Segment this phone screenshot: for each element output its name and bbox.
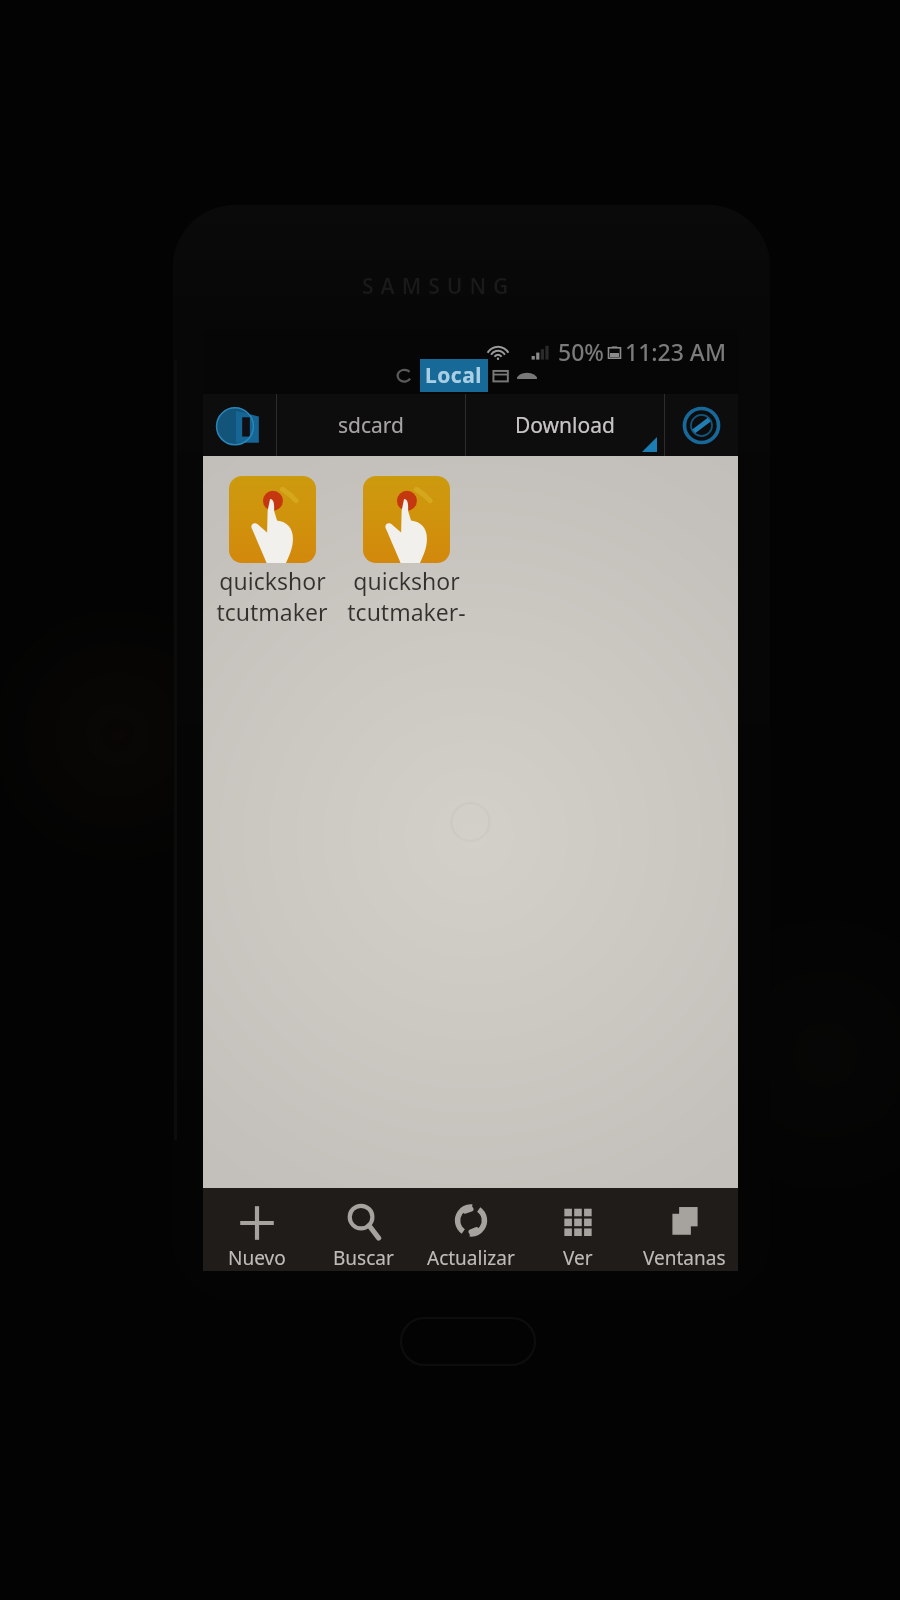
button[interactable]: Download bbox=[466, 394, 664, 456]
button[interactable]: Actualizar bbox=[417, 1188, 524, 1271]
staticText: Nuevo bbox=[228, 1245, 286, 1271]
button[interactable]: Close bbox=[665, 394, 738, 456]
staticText: sdcard bbox=[338, 411, 405, 440]
staticText: Actualizar bbox=[427, 1245, 515, 1271]
button[interactable]: Device storage bbox=[203, 394, 276, 456]
staticText: 11:23 AM bbox=[625, 336, 727, 367]
staticText: quickshor bbox=[353, 565, 460, 596]
staticText: 50% bbox=[558, 336, 604, 367]
staticText: Ver bbox=[563, 1245, 593, 1271]
button[interactable]: sdcard bbox=[277, 394, 465, 456]
staticText: Buscar bbox=[333, 1245, 394, 1271]
button[interactable]: Ventanas bbox=[631, 1188, 738, 1271]
button[interactable]: Nuevo bbox=[203, 1188, 310, 1271]
staticText: quickshor bbox=[219, 565, 326, 596]
staticText: Local bbox=[425, 361, 483, 390]
staticText: tcutmaker bbox=[216, 596, 328, 627]
staticText: SAMSUNG bbox=[362, 272, 516, 301]
button[interactable]: Ver bbox=[524, 1188, 631, 1271]
button[interactable]: quickshor bbox=[339, 476, 473, 627]
button[interactable]: Buscar bbox=[310, 1188, 417, 1271]
button[interactable]: quickshor bbox=[205, 476, 339, 627]
staticText: tcutmaker- bbox=[347, 596, 466, 627]
staticText: Download bbox=[515, 411, 615, 440]
staticText: Ventanas bbox=[643, 1245, 726, 1271]
